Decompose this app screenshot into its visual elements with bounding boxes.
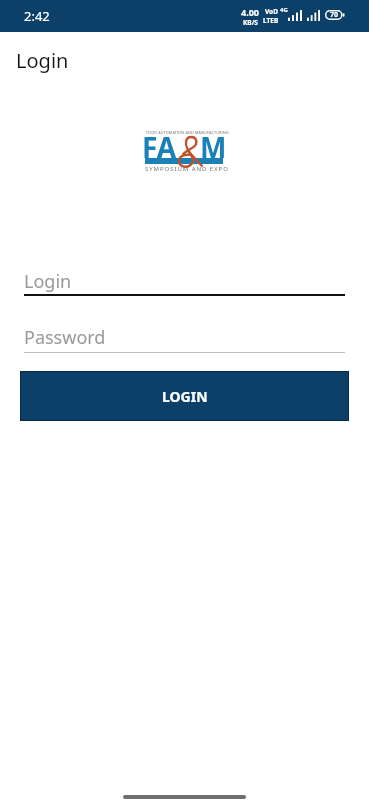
button[interactable]: Password <box>24 325 345 355</box>
staticText: KB/S <box>243 18 258 27</box>
staticText: 4.00 <box>241 6 259 18</box>
staticText: Login <box>16 47 69 74</box>
staticText: VoD <box>265 7 278 16</box>
other: FA&M Symposium and Expo logo <box>144 130 230 172</box>
staticText: Password <box>24 325 106 350</box>
staticText: LOGIN <box>162 387 208 406</box>
staticText: M <box>200 128 227 166</box>
staticText: Login <box>24 269 72 294</box>
staticText: FOOD AUTOMATION AND MANUFACTURING <box>146 130 229 135</box>
staticText: 2:42 <box>24 7 50 25</box>
staticText: FA <box>142 128 177 166</box>
button[interactable]: LOGIN <box>21 372 348 420</box>
staticText: LTEB <box>263 16 279 25</box>
staticText: SYMPOSIUM AND EXPO <box>145 165 229 173</box>
staticText: 4G <box>280 6 288 14</box>
staticText: 70 <box>330 10 339 20</box>
button[interactable]: Login <box>24 267 345 297</box>
